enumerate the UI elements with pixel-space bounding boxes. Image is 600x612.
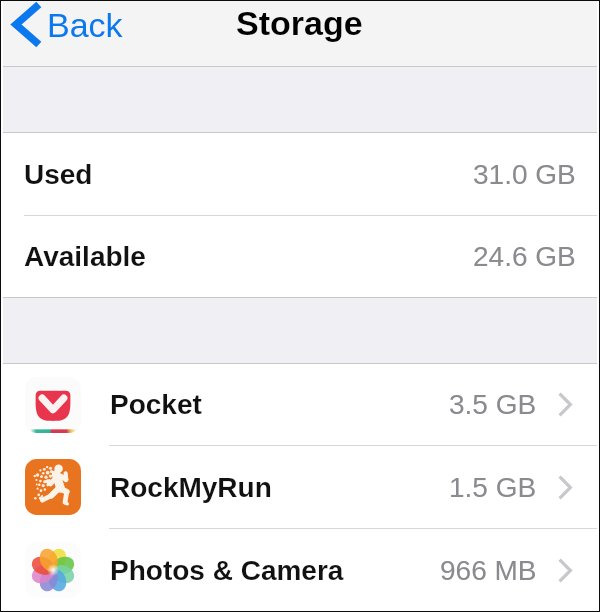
staticText: 1.5 GB <box>449 472 537 503</box>
staticText: Photos & Camera <box>110 555 344 586</box>
button[interactable]: Available <box>3 216 597 297</box>
staticText: Pocket <box>110 389 202 420</box>
staticText: Storage <box>236 4 363 42</box>
button[interactable]: Photos & Camera <box>3 529 597 611</box>
button[interactable]: Back <box>3 1 129 48</box>
staticText: 31.0 GB <box>473 159 576 190</box>
staticText: RockMyRun <box>110 472 272 503</box>
button[interactable]: Used <box>3 133 597 215</box>
staticText: Available <box>24 241 146 272</box>
staticText: 24.6 GB <box>473 241 576 272</box>
staticText: Used <box>24 159 93 190</box>
staticText: Back <box>47 6 123 44</box>
button[interactable]: Pocket <box>3 364 597 445</box>
staticText: 3.5 GB <box>449 389 537 420</box>
staticText: 966 MB <box>440 555 537 586</box>
button[interactable]: RockMyRun <box>3 446 597 528</box>
